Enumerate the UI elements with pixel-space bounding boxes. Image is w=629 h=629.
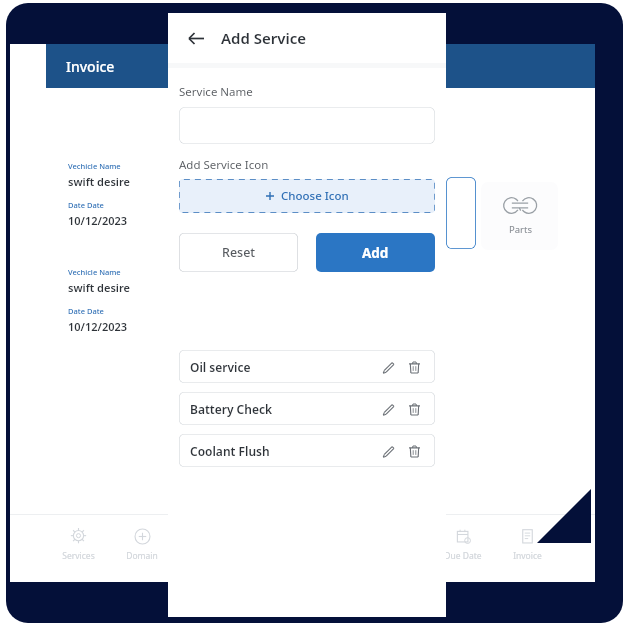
button[interactable]: Edit Oil service [378, 357, 398, 377]
staticText: Due Date [444, 550, 482, 562]
button[interactable]: Parts [481, 182, 558, 250]
staticText: Date Date [68, 200, 104, 210]
staticText: swift desire [68, 280, 130, 295]
button[interactable]: Domain [118, 524, 166, 566]
button[interactable]: Back [182, 24, 210, 52]
staticText: Oil service [190, 359, 378, 375]
button[interactable]: Delete Oil service [404, 357, 424, 377]
staticText: Date Date [68, 306, 104, 316]
button[interactable] [179, 107, 435, 144]
staticText: Add [362, 244, 389, 262]
staticText: Vechicle Name [68, 267, 121, 277]
staticText: Service Name [179, 84, 253, 100]
staticText: 10/12/2023 [68, 213, 128, 228]
button[interactable] [446, 177, 476, 249]
button[interactable]: Coolant Flush [179, 434, 435, 467]
button[interactable]: Delete Battery Check [404, 399, 424, 419]
button[interactable]: Services [54, 524, 102, 566]
staticText: swift desire [68, 174, 130, 189]
staticText: Vechicle Name [68, 161, 121, 171]
button[interactable]: Due Date [439, 524, 487, 566]
staticText: Invoice [513, 550, 542, 562]
staticText: Coolant Flush [190, 443, 378, 459]
button[interactable]: Vechicle Name [55, 254, 395, 342]
button[interactable]: Invoice [503, 524, 551, 566]
staticText: Domain [126, 550, 158, 562]
button[interactable]: Add [316, 233, 435, 272]
staticText: Reset [222, 244, 256, 261]
staticText: Choose Icon [281, 188, 349, 204]
staticText: 10/12/2023 [68, 319, 128, 334]
button[interactable]: Vechicle Name [55, 148, 395, 236]
button[interactable]: Edit Battery Check [378, 399, 398, 419]
button[interactable]: Edit Coolant Flush [378, 441, 398, 461]
staticText: Add Service Icon [179, 157, 269, 173]
staticText: Services [62, 550, 95, 562]
button[interactable]: Choose Icon [179, 179, 435, 213]
button[interactable]: Reset [179, 233, 298, 272]
button[interactable]: Oil service [179, 350, 435, 383]
staticText: Battery Check [190, 401, 378, 417]
staticText: Invoice [66, 57, 115, 76]
staticText: Parts [509, 223, 532, 236]
button[interactable]: Battery Check [179, 392, 435, 425]
button[interactable]: Delete Coolant Flush [404, 441, 424, 461]
staticText: Add Service [221, 28, 307, 48]
